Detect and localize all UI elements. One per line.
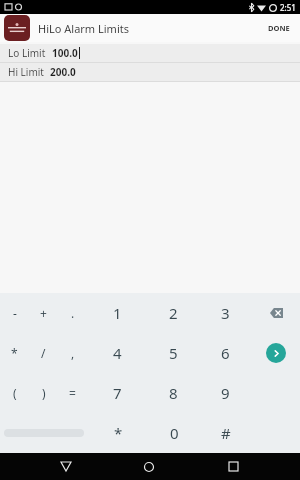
button[interactable]: Recents (216, 453, 250, 480)
button[interactable]: Lo Limit (0, 44, 300, 62)
staticText: + (40, 305, 47, 321)
staticText: ( (13, 385, 17, 401)
staticText: 9 (221, 383, 230, 403)
staticText: - (13, 305, 17, 321)
staticText: 8 (169, 383, 178, 403)
button[interactable]: 1 (87, 293, 147, 333)
staticText: 2:51 (280, 2, 296, 13)
staticText: ) (42, 385, 46, 401)
button[interactable]: = (58, 373, 87, 413)
staticText: , (71, 345, 75, 361)
staticText: 2 (169, 303, 178, 323)
button[interactable]: 4 (87, 333, 147, 373)
staticText: . (71, 305, 75, 321)
staticText: / (41, 345, 46, 361)
button[interactable]: . (58, 293, 87, 333)
staticText: Hi Limit (8, 65, 44, 79)
button[interactable]: ( (0, 373, 29, 413)
button[interactable]: 9 (199, 373, 251, 413)
button[interactable]: Back (49, 453, 83, 480)
button[interactable]: # (200, 413, 252, 453)
staticText: 200.0 (50, 65, 76, 79)
staticText: = (69, 385, 76, 401)
button[interactable]: , (58, 333, 87, 373)
button[interactable]: App logo (4, 15, 30, 41)
button[interactable]: 7 (87, 373, 147, 413)
button[interactable]: 6 (199, 333, 251, 373)
staticText: * (114, 423, 123, 443)
staticText: * (11, 345, 18, 361)
button[interactable]: 0 (148, 413, 200, 453)
button[interactable]: 8 (147, 373, 199, 413)
button[interactable]: 5 (147, 333, 199, 373)
button[interactable]: Home (132, 453, 166, 480)
staticText: 5 (169, 343, 178, 363)
button[interactable]: + (29, 293, 58, 333)
button[interactable]: Hi Limit (0, 63, 300, 81)
button[interactable]: Space (0, 413, 88, 453)
button[interactable]: Backspace (261, 298, 291, 328)
button[interactable]: 3 (199, 293, 251, 333)
button[interactable]: * (0, 333, 29, 373)
staticText: 3 (221, 303, 230, 323)
staticText: DONE (268, 23, 290, 33)
staticText: # (221, 423, 231, 443)
staticText: 0 (170, 423, 179, 443)
staticText: 7 (113, 383, 122, 403)
staticText: 1 (113, 303, 122, 323)
button[interactable]: * (88, 413, 148, 453)
staticText: 100.0 (52, 46, 78, 60)
staticText: 4 (113, 343, 122, 363)
button[interactable]: DONE (258, 17, 300, 39)
button[interactable]: Enter (266, 343, 286, 363)
button[interactable]: / (29, 333, 58, 373)
staticText: 6 (221, 343, 230, 363)
button[interactable]: 2 (147, 293, 199, 333)
staticText: HiLo Alarm Limits (38, 21, 129, 36)
staticText: Lo Limit (8, 46, 46, 60)
button[interactable]: - (0, 293, 29, 333)
button[interactable]: ) (29, 373, 58, 413)
